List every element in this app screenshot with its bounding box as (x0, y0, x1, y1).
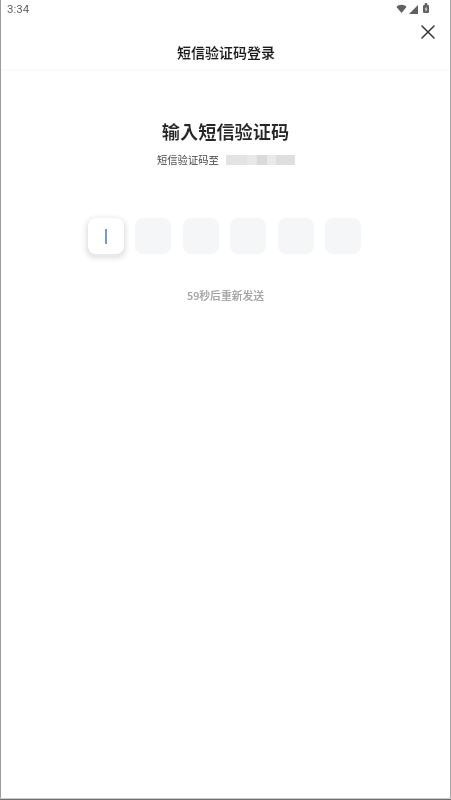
staticText: 短信验证码登录 (177, 42, 275, 62)
staticText: 59秒后重新发送 (187, 287, 265, 303)
staticText: 短信验证码至 (157, 152, 219, 167)
button[interactable]: Verification code digit 1 (88, 218, 124, 254)
button[interactable]: Close (413, 17, 443, 47)
button[interactable]: 59秒后重新发送 (187, 287, 265, 303)
staticText: 输入短信验证码 (0, 118, 451, 144)
staticText: 3:34 (7, 2, 30, 15)
